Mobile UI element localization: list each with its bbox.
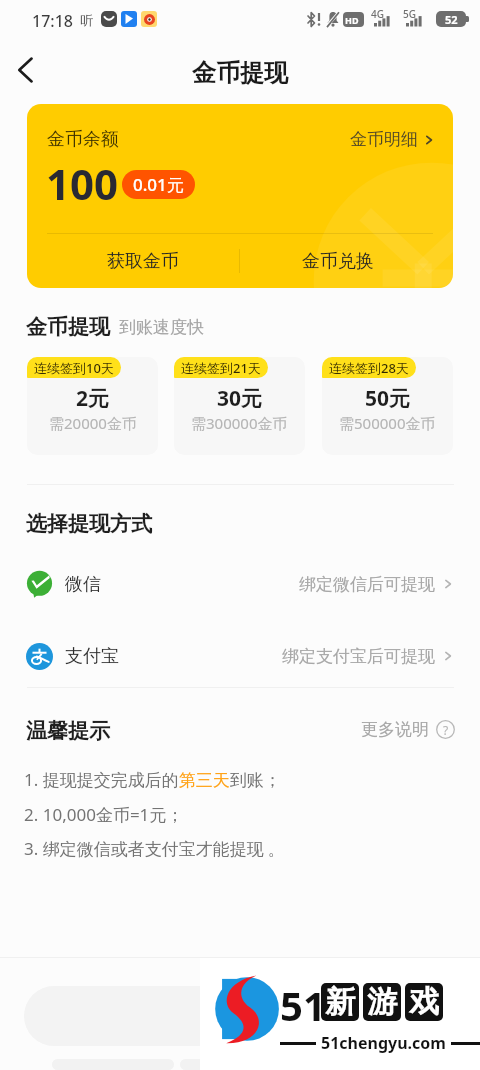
staticText: 绑定微信后可提现 — [299, 574, 435, 595]
staticText: 新 — [325, 983, 355, 1021]
staticText: 金币明细 — [350, 129, 418, 150]
staticText: 100 — [46, 155, 119, 212]
staticText: 更多说明 — [361, 719, 429, 740]
staticText: 4G — [371, 7, 384, 21]
staticText: 听 — [80, 12, 93, 28]
button[interactable]: 金币兑换 — [240, 234, 453, 288]
staticText: HD — [345, 14, 359, 26]
staticText: ? — [443, 722, 449, 738]
staticText: 游 — [367, 983, 397, 1021]
staticText: 2. 10,000金币=1元； — [24, 803, 184, 826]
staticText: 金币余额 — [47, 128, 119, 151]
staticText: 3. 绑定微信或者支付宝才能提现 。 — [24, 837, 286, 860]
staticText: 0.01元 — [133, 173, 184, 196]
staticText: 金币兑换 — [302, 250, 374, 273]
staticText: 5G — [403, 7, 416, 21]
staticText: 52 — [445, 12, 458, 27]
button[interactable] — [174, 357, 305, 455]
button[interactable]: 微信 — [0, 564, 480, 604]
button[interactable]: 更多说明 — [361, 719, 455, 740]
button[interactable]: 0.01元 — [122, 170, 195, 199]
button[interactable] — [322, 357, 453, 455]
staticText: 30元 — [217, 384, 263, 413]
staticText: 金币提现 — [26, 314, 110, 340]
staticText: 连续签到21天 — [181, 359, 261, 377]
staticText: 50元 — [365, 384, 411, 413]
button[interactable]: 获取金币 — [27, 234, 239, 288]
staticText: 51 — [280, 978, 326, 1032]
staticText: 绑定支付宝后可提现 — [282, 646, 435, 667]
button[interactable]: 支付宝 — [0, 636, 480, 676]
staticText: 微信 — [65, 573, 101, 596]
staticText: 支付宝 — [65, 645, 119, 668]
staticText: 需20000金币 — [49, 413, 137, 433]
staticText: 1. 提现提交完成后的第三天到账； — [24, 768, 281, 791]
button[interactable] — [27, 357, 158, 455]
staticText: 17:18 — [32, 10, 73, 32]
staticText: 需500000金币 — [339, 413, 436, 433]
staticText: 金币提现 — [192, 58, 288, 88]
staticText: 需300000金币 — [191, 413, 288, 433]
button[interactable]: Back — [8, 52, 44, 88]
staticText: 温馨提示 — [26, 718, 110, 744]
staticText: 到账速度快 — [119, 317, 204, 338]
staticText: 戏 — [409, 983, 439, 1021]
staticText: 连续签到28天 — [329, 359, 409, 377]
staticText: 选择提现方式 — [26, 511, 152, 537]
staticText: 连续签到10天 — [34, 359, 114, 377]
staticText: 2元 — [76, 384, 110, 413]
staticText: 51chengyu.com — [321, 1032, 446, 1054]
button[interactable]: 金币明细 — [350, 129, 435, 150]
staticText: 获取金币 — [107, 250, 179, 273]
